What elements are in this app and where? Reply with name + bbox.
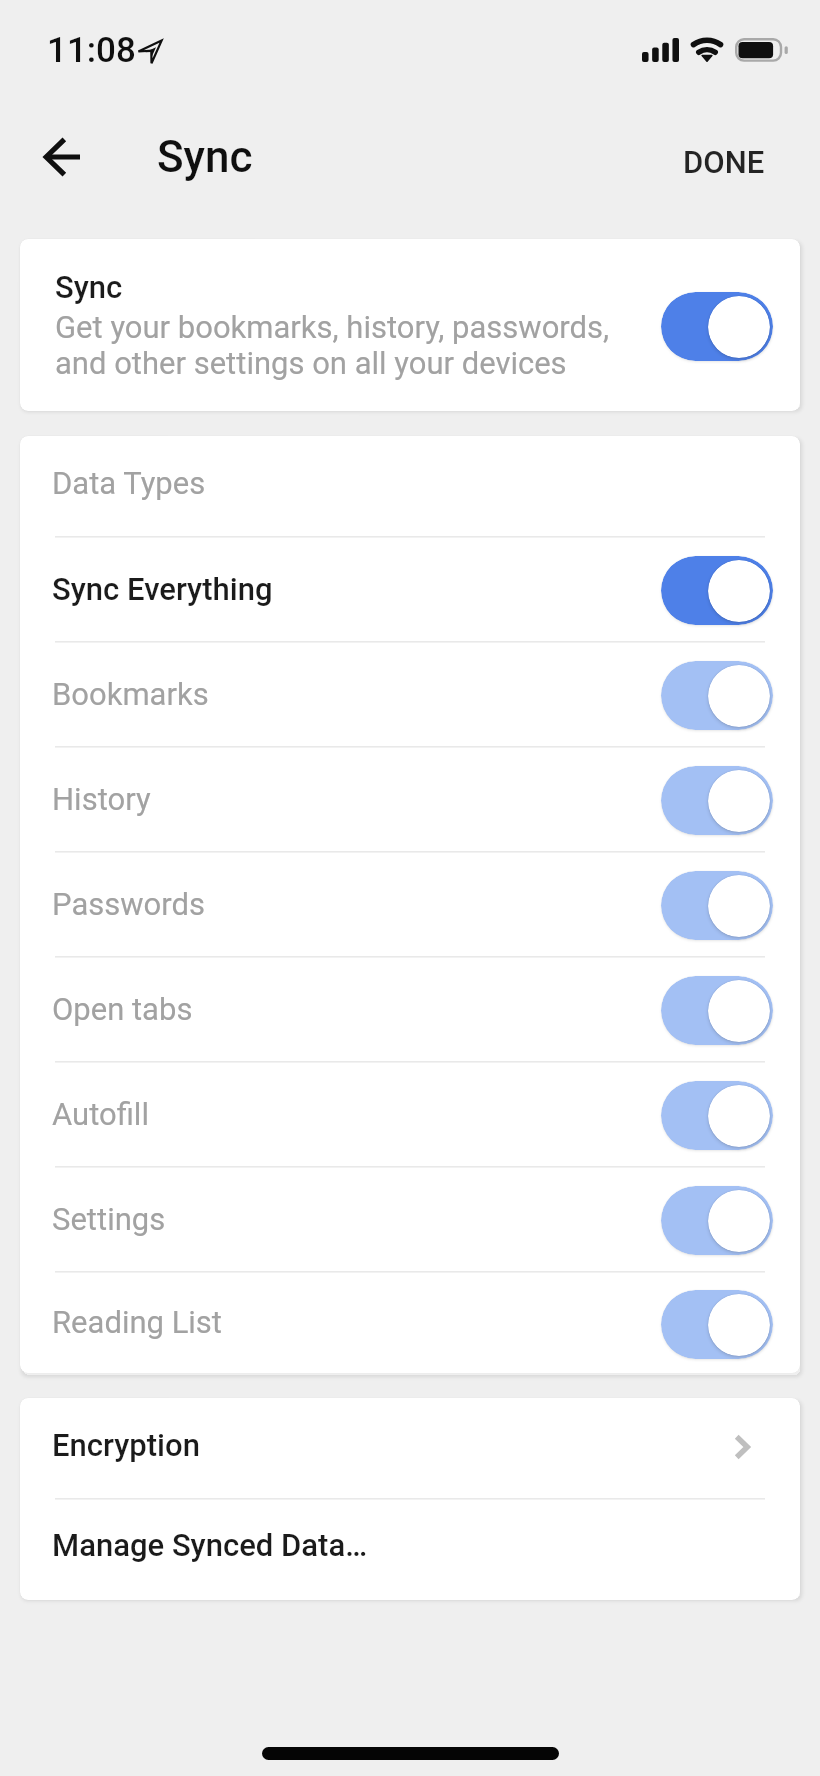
button[interactable]: Toggle: [661, 871, 773, 940]
button[interactable]: Autofill: [20, 1061, 800, 1166]
button[interactable]: Passwords: [20, 851, 800, 956]
staticText: Autofill: [52, 1096, 149, 1132]
staticText: Get your bookmarks, history, passwords, …: [55, 309, 610, 381]
button[interactable]: Toggle: [661, 292, 773, 361]
staticText: Manage Synced Data…: [52, 1527, 368, 1563]
staticText: Bookmarks: [52, 676, 209, 712]
button[interactable]: Toggle: [661, 766, 773, 835]
staticText: History: [52, 781, 151, 817]
button[interactable]: Toggle: [661, 556, 773, 625]
button[interactable]: Manage Synced Data…: [20, 1498, 800, 1598]
staticText: Data Types: [52, 465, 206, 501]
staticText: Reading List: [52, 1304, 223, 1340]
button[interactable]: Encryption: [20, 1398, 800, 1498]
staticText: Encryption: [52, 1427, 200, 1463]
staticText: DONE: [683, 144, 765, 180]
button[interactable]: Toggle: [661, 1186, 773, 1255]
button[interactable]: History: [20, 746, 800, 851]
staticText: 11:08: [47, 30, 136, 71]
button[interactable]: Toggle: [661, 1081, 773, 1150]
button[interactable]: Sync Everything: [20, 536, 800, 641]
button[interactable]: Toggle: [661, 976, 773, 1045]
staticText: Sync Everything: [52, 571, 273, 607]
staticText: Sync: [157, 131, 253, 183]
button[interactable]: Back: [14, 109, 110, 205]
button[interactable]: Open tabs: [20, 956, 800, 1061]
button[interactable]: Reading List: [20, 1271, 800, 1373]
staticText: Sync: [55, 269, 123, 305]
button[interactable]: Toggle: [661, 1290, 773, 1359]
button[interactable]: Settings: [20, 1166, 800, 1271]
staticText: Open tabs: [52, 991, 193, 1027]
button[interactable]: Bookmarks: [20, 641, 800, 746]
button[interactable]: Sync: [20, 239, 800, 411]
staticText: Settings: [52, 1201, 166, 1237]
staticText: Passwords: [52, 886, 205, 922]
button[interactable]: Toggle: [661, 661, 773, 730]
button[interactable]: DONE: [659, 114, 789, 210]
